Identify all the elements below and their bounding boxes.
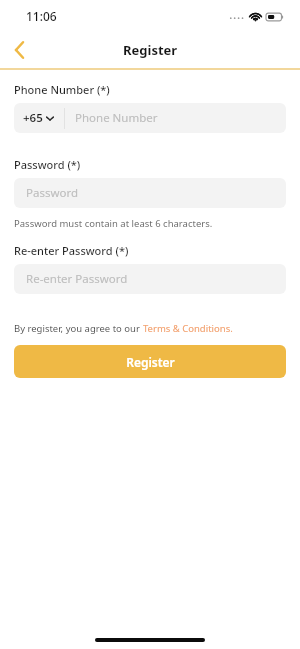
staticText: By register, you agree to our	[14, 322, 143, 335]
button[interactable]: +65	[14, 103, 64, 133]
staticText: 11:06	[26, 8, 57, 24]
staticText: Register	[123, 41, 178, 59]
button[interactable]: Password	[14, 178, 286, 208]
staticText: Re-enter Password (*)	[14, 243, 129, 258]
button[interactable]: Back	[0, 33, 38, 67]
staticText: +65	[23, 110, 43, 126]
button[interactable]: Register	[14, 345, 286, 378]
staticText: Password	[26, 185, 79, 201]
staticText: Re-enter Password	[26, 271, 128, 287]
staticText: Password must contain at least 6 charact…	[14, 217, 213, 230]
staticText: Register	[126, 354, 175, 370]
button[interactable]: Phone Number	[65, 103, 286, 133]
button[interactable]: Terms & Conditions.	[143, 322, 233, 335]
button[interactable]: Re-enter Password	[14, 264, 286, 294]
staticText: Phone Number	[75, 110, 158, 126]
staticText: Password (*)	[14, 157, 81, 172]
staticText: Phone Number (*)	[14, 82, 110, 97]
staticText: Terms & Conditions.	[143, 322, 233, 335]
